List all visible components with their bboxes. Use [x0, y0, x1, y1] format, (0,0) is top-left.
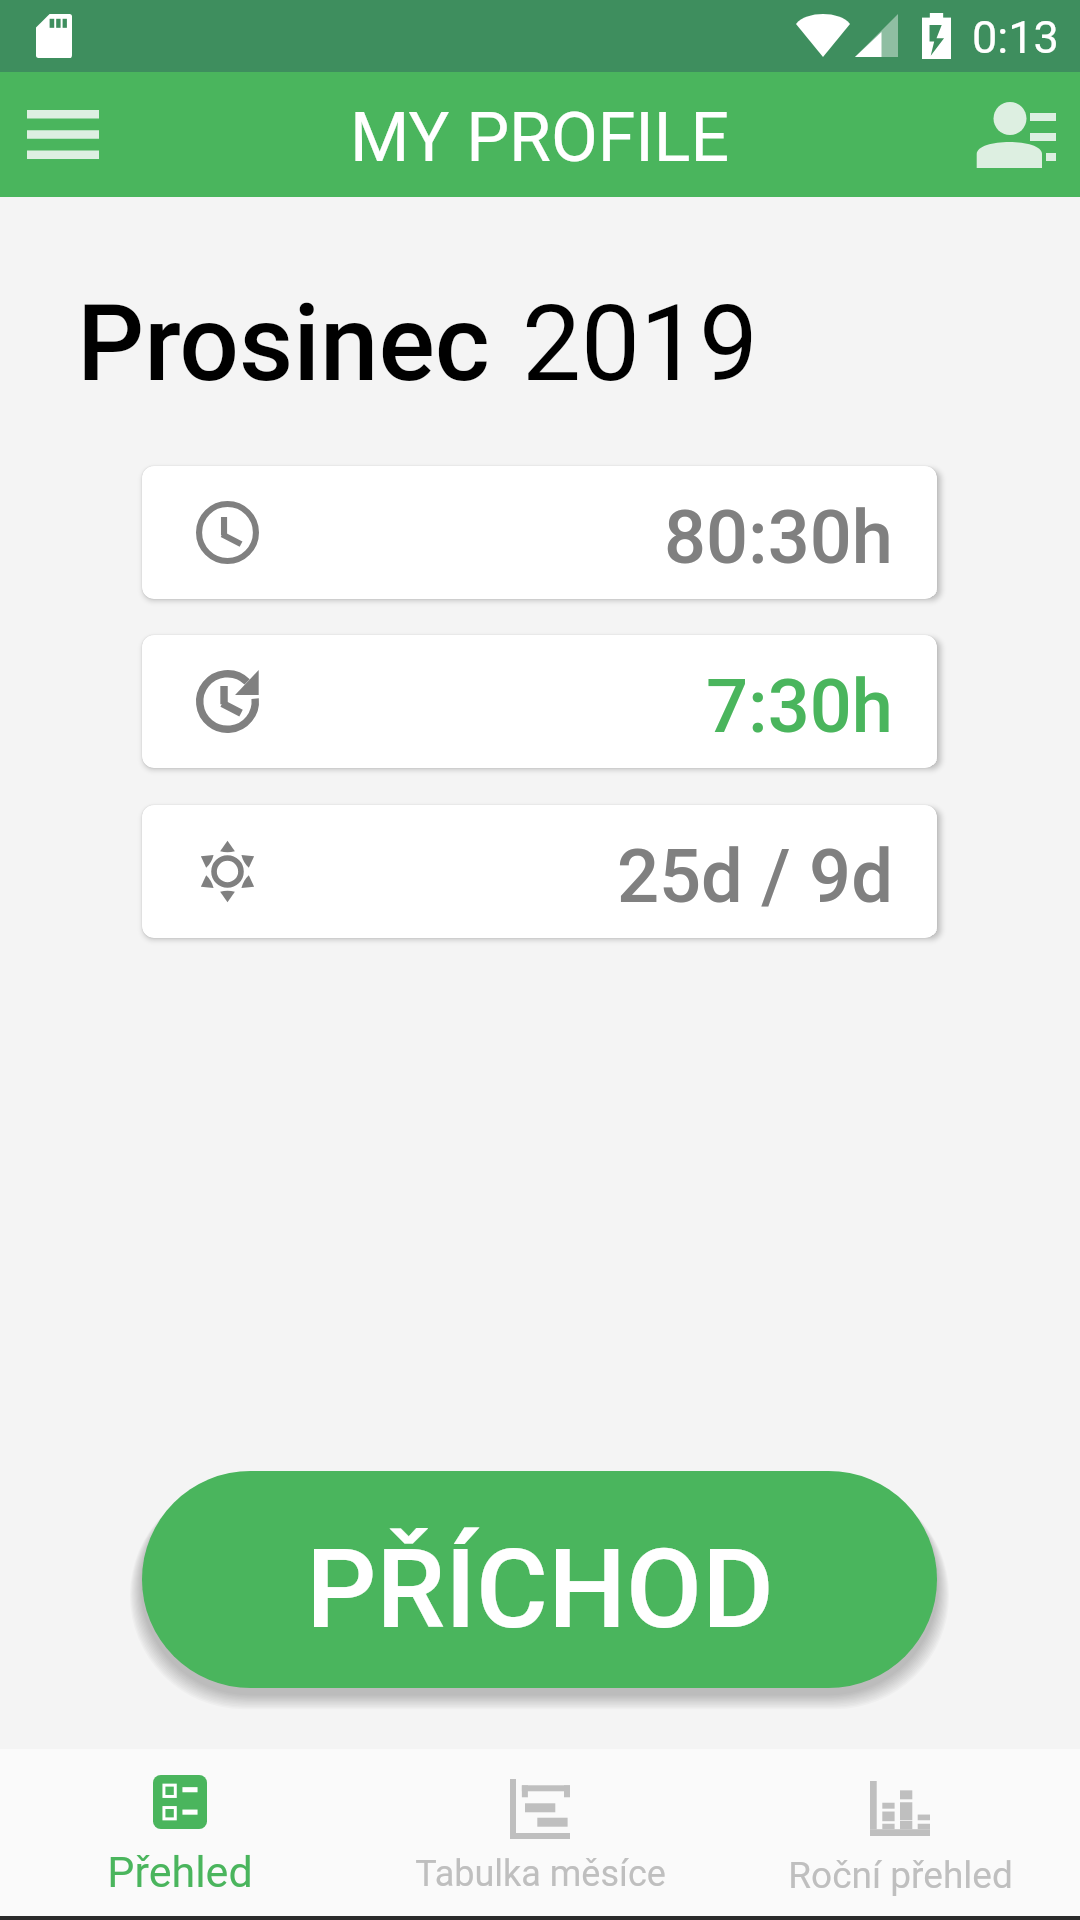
button[interactable]: PŘÍCHOD — [142, 1471, 937, 1688]
button[interactable]: Roční přehled — [720, 1749, 1080, 1916]
staticText: PŘÍCHOD — [306, 1525, 774, 1654]
staticText: Tabulka měsíce — [415, 1853, 666, 1895]
button[interactable]: 7:30h — [142, 635, 937, 768]
staticText: MY PROFILE — [350, 98, 730, 178]
button[interactable]: 25d / 9d — [142, 805, 937, 938]
button[interactable]: 80:30h — [142, 466, 937, 599]
button[interactable]: Přehled — [0, 1749, 360, 1916]
staticText: 25d / 9d — [617, 833, 893, 920]
button[interactable]: Open navigation menu — [0, 72, 125, 197]
staticText: 7:30h — [706, 663, 893, 750]
button[interactable]: Contacts — [955, 72, 1080, 197]
button[interactable]: Tabulka měsíce — [360, 1749, 720, 1916]
staticText: Prosinec — [77, 283, 490, 406]
staticText: 80:30h — [664, 494, 893, 581]
staticText: 0:13 — [972, 11, 1059, 64]
staticText: Roční přehled — [788, 1854, 1013, 1897]
staticText: Přehled — [107, 1847, 253, 1897]
staticText: 2019 — [522, 283, 759, 406]
